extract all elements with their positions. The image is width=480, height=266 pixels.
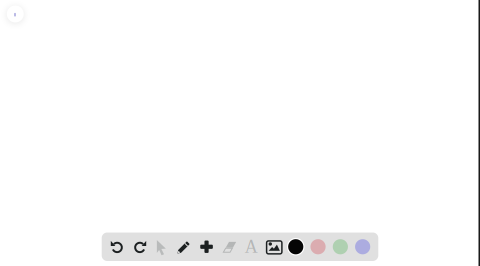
button[interactable]: Redo: [128, 232, 151, 261]
button[interactable]: Purple: [351, 232, 374, 261]
button[interactable]: Draw: [173, 232, 195, 261]
button[interactable]: Erase: [218, 232, 240, 261]
button[interactable]: Select: [151, 232, 173, 261]
staticText: A: [245, 237, 258, 257]
button[interactable]: Menu: [5, 4, 25, 24]
button[interactable]: Black: [285, 232, 307, 261]
button[interactable]: Pink: [307, 232, 329, 261]
button[interactable]: Text: [240, 232, 262, 261]
button[interactable]: Green: [329, 232, 351, 261]
button[interactable]: Add: [195, 232, 218, 261]
button[interactable]: Insert image: [262, 232, 285, 261]
button[interactable]: Undo: [106, 232, 128, 261]
